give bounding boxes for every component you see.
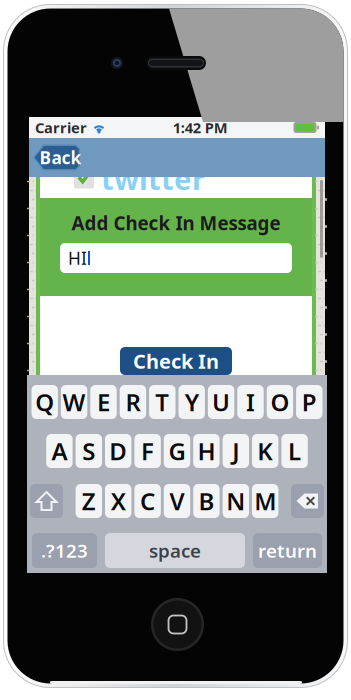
button[interactable]: Back	[33, 144, 80, 170]
button[interactable]: Shift	[30, 484, 63, 518]
staticText: S	[82, 435, 95, 467]
button[interactable]: J	[223, 434, 249, 468]
button[interactable]: D	[105, 434, 131, 468]
button[interactable]: U	[208, 385, 234, 419]
staticText: T	[155, 386, 169, 418]
staticText: HI	[68, 246, 87, 269]
staticText: L	[288, 435, 301, 467]
staticText: B	[198, 485, 214, 517]
staticText: N	[226, 485, 245, 517]
button[interactable]: C	[134, 484, 161, 518]
staticText: Z	[82, 485, 96, 517]
staticText: D	[109, 435, 127, 467]
button[interactable]: return	[253, 533, 322, 568]
staticText: G	[168, 435, 185, 467]
button[interactable]: Delete	[291, 484, 324, 518]
button[interactable]: M	[252, 484, 278, 518]
staticText: space	[149, 538, 201, 563]
staticText: Carrier	[35, 118, 87, 137]
staticText: U	[212, 386, 230, 418]
button[interactable]: O	[267, 385, 293, 419]
staticText: 1:42 PM	[173, 118, 228, 137]
button[interactable]: L	[281, 434, 308, 468]
button[interactable]: R	[120, 385, 146, 419]
button[interactable]: P	[296, 385, 322, 419]
staticText: P	[302, 386, 317, 418]
button[interactable]: S	[76, 434, 102, 468]
button[interactable]: G	[164, 434, 190, 468]
staticText: R	[125, 386, 140, 418]
button[interactable]: T	[149, 385, 175, 419]
button[interactable]: space	[105, 533, 245, 568]
button[interactable]: V	[164, 484, 190, 518]
staticText: V	[169, 485, 184, 517]
staticText: twitter	[101, 159, 205, 198]
staticText: C	[140, 485, 155, 517]
staticText: Y	[185, 386, 199, 418]
button[interactable]: H	[193, 434, 220, 468]
button[interactable]: Z	[76, 484, 102, 518]
button[interactable]: .?123	[32, 533, 97, 568]
staticText: E	[97, 386, 110, 418]
button[interactable]: F	[134, 434, 161, 468]
staticText: Back	[39, 146, 81, 169]
button[interactable]: E	[90, 385, 117, 419]
staticText: Q	[35, 386, 54, 418]
button[interactable]: X	[105, 484, 131, 518]
staticText: A	[51, 435, 67, 467]
button[interactable]: A	[46, 434, 73, 468]
staticText: W	[63, 386, 86, 418]
staticText: Add Check In Message	[71, 211, 280, 235]
staticText: K	[257, 435, 273, 467]
staticText: M	[254, 485, 276, 517]
staticText: .?123	[41, 538, 88, 563]
staticText: J	[232, 435, 239, 467]
button[interactable]: W	[61, 385, 87, 419]
button[interactable]: B	[193, 484, 220, 518]
button[interactable]: Y	[178, 385, 205, 419]
button[interactable]: K	[252, 434, 278, 468]
button[interactable]: N	[223, 484, 249, 518]
staticText: return	[258, 538, 317, 563]
staticText: Check In	[133, 348, 219, 374]
button[interactable]: I	[237, 385, 264, 419]
staticText: H	[197, 435, 215, 467]
staticText: O	[270, 386, 289, 418]
button[interactable]: Q	[31, 385, 58, 419]
staticText: F	[141, 435, 154, 467]
staticText: X	[111, 485, 126, 517]
staticText: I	[246, 386, 255, 418]
button[interactable]: Check In	[120, 347, 232, 375]
